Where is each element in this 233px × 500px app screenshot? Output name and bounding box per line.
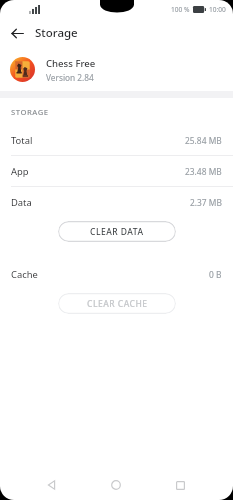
staticText: 0 B <box>209 269 222 280</box>
staticText: Version 2.84 <box>46 72 94 83</box>
button[interactable]: Back <box>39 472 65 498</box>
button[interactable]: Total <box>0 125 233 155</box>
button[interactable]: Data <box>0 187 233 217</box>
button[interactable]: CLEAR DATA <box>58 221 176 242</box>
staticText: STORAGE <box>11 107 49 117</box>
staticText: App <box>11 165 29 178</box>
button[interactable]: App <box>0 156 233 186</box>
button[interactable]: Back <box>6 22 28 44</box>
staticText: 100 % <box>171 5 190 14</box>
staticText: Storage <box>35 25 78 41</box>
button[interactable]: Cache <box>0 259 233 289</box>
staticText: Data <box>11 196 32 209</box>
staticText: Chess Free <box>46 57 96 70</box>
button: CLEAR CACHE <box>58 293 176 314</box>
staticText: 25.84 MB <box>185 135 222 146</box>
staticText: Total <box>11 134 33 147</box>
staticText: CLEAR DATA <box>90 226 144 238</box>
staticText: CLEAR CACHE <box>87 298 148 310</box>
button[interactable]: Recent apps <box>167 472 193 498</box>
staticText: 10:00 <box>209 5 226 14</box>
staticText: Cache <box>11 268 38 281</box>
staticText: 2.37 MB <box>190 197 222 208</box>
staticText: 23.48 MB <box>185 166 222 177</box>
button[interactable]: Chess Free <box>0 48 233 91</box>
button[interactable]: Home <box>103 472 129 498</box>
